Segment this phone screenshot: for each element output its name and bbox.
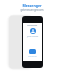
staticText: Continue [28,55,37,58]
button[interactable]: Profile photo [30,28,36,34]
staticText: Messenger [27,24,38,27]
staticText: getmessenger.com [20,8,44,12]
staticText: Messenger [22,3,42,8]
button[interactable] [29,49,36,54]
staticText: Jane Cooper [27,35,39,38]
